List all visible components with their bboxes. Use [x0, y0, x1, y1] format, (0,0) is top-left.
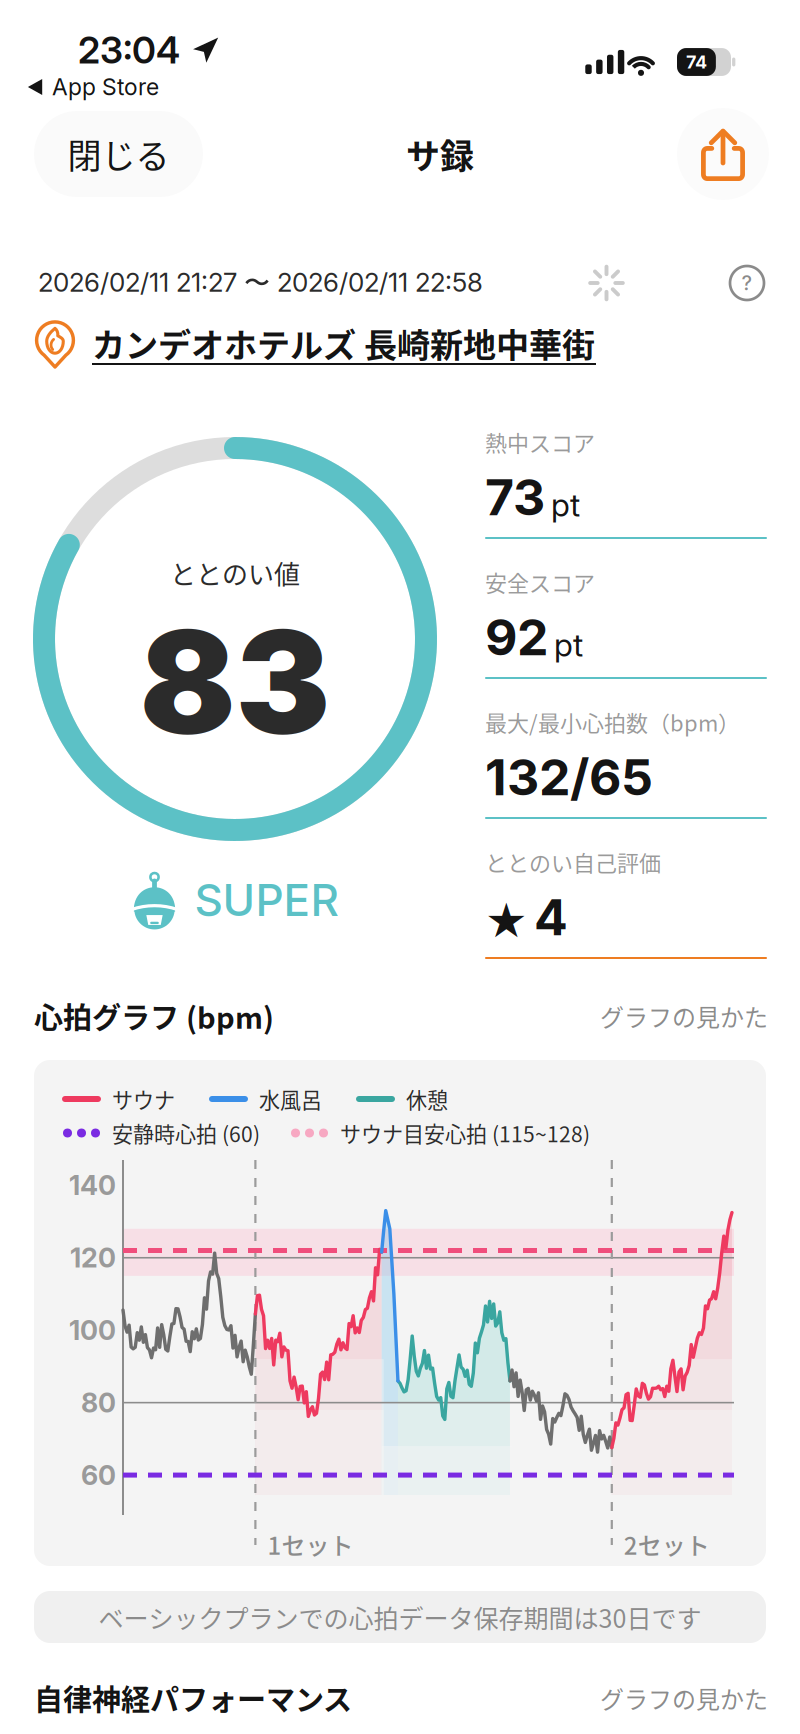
staticText: pt [551, 485, 580, 524]
staticText: 閉じる [67, 129, 169, 179]
button[interactable]: 閉じる [34, 111, 203, 197]
button[interactable]: グラフの見かた [600, 999, 768, 1033]
staticText: 水風呂 [259, 1084, 322, 1114]
staticText: 休憩 [406, 1084, 448, 1114]
staticText: 140 [69, 1169, 116, 1202]
staticText: 2026/02/11 21:27 〜 2026/02/11 22:58 [38, 266, 483, 299]
staticText: 安静時心拍 (60) [112, 1118, 260, 1148]
staticText: ★ [485, 896, 528, 947]
staticText: SUPER [194, 873, 339, 927]
button[interactable]: グラフの見かた [600, 1681, 768, 1715]
staticText: 74 [686, 51, 707, 73]
staticText: 100 [69, 1314, 116, 1346]
staticText: App Store [52, 73, 159, 101]
staticText: 73 [485, 467, 545, 527]
staticText: 最大/最小心拍数（bpm） [485, 706, 740, 738]
staticText: サ録 [406, 129, 474, 179]
staticText: ととのい自己評価 [485, 846, 661, 878]
staticText: 92 [485, 607, 548, 667]
staticText: グラフの見かた [600, 1681, 768, 1715]
staticText: ベーシックプランでの心拍データ保存期間は30日です [98, 1599, 701, 1635]
staticText: 安全スコア [485, 566, 595, 598]
staticText: 2セット [624, 1527, 710, 1562]
staticText: サウナ [112, 1084, 175, 1114]
staticText: 23:04 [78, 28, 180, 72]
staticText: ととのい値 [170, 554, 300, 592]
staticText: 60 [81, 1459, 116, 1491]
staticText: 83 [139, 596, 330, 768]
staticText: グラフの見かた [600, 999, 768, 1033]
staticText: 心拍グラフ (bpm) [34, 995, 274, 1037]
button[interactable]: Help [730, 266, 764, 300]
staticText: 1セット [267, 1527, 353, 1562]
staticText: pt [554, 625, 583, 664]
staticText: 120 [70, 1241, 116, 1274]
staticText: ? [741, 271, 752, 295]
button[interactable]: Share [677, 108, 769, 200]
staticText: カンデオホテルズ 長崎新地中華街 [92, 319, 595, 367]
staticText: 132/65 [485, 747, 653, 807]
staticText: 4 [534, 887, 568, 947]
staticText: 自律神経パフォーマンス [34, 1677, 352, 1719]
button[interactable]: カンデオホテルズ 長崎新地中華街 [0, 318, 800, 370]
staticText: 80 [81, 1386, 116, 1419]
staticText: 熱中スコア [485, 426, 595, 458]
staticText: サウナ目安心拍 (115~128) [340, 1118, 590, 1148]
